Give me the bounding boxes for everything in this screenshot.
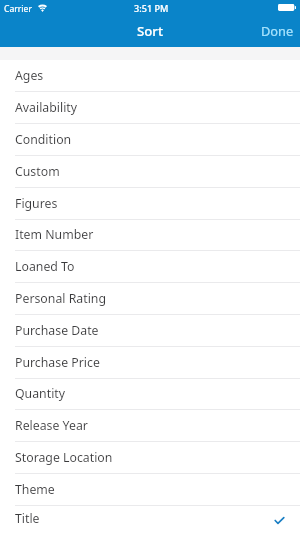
staticText: Ages: [15, 67, 44, 84]
staticText: Purchase Date: [15, 322, 99, 339]
staticText: Quantity: [15, 385, 66, 402]
button[interactable]: Ages: [0, 60, 300, 92]
staticText: Availability: [15, 99, 78, 116]
button[interactable]: Loaned To: [0, 251, 300, 283]
button[interactable]: Condition: [0, 124, 300, 156]
staticText: Done: [261, 22, 294, 39]
button[interactable]: Title: [0, 506, 300, 533]
staticText: 3:51 PM: [134, 2, 169, 14]
staticText: Storage Location: [15, 449, 113, 466]
staticText: Purchase Price: [15, 354, 100, 371]
staticText: Theme: [15, 481, 55, 498]
staticText: Loaned To: [15, 258, 75, 275]
staticText: Item Number: [15, 226, 94, 243]
staticText: Custom: [15, 163, 60, 180]
staticText: Title: [15, 510, 40, 527]
button[interactable]: Release Year: [0, 410, 300, 442]
button[interactable]: Custom: [0, 156, 300, 188]
button[interactable]: Done: [247, 20, 300, 47]
button[interactable]: Availability: [0, 92, 300, 124]
button[interactable]: Storage Location: [0, 442, 300, 474]
button[interactable]: Purchase Date: [0, 315, 300, 347]
button[interactable]: Personal Rating: [0, 283, 300, 315]
staticText: Carrier: [4, 3, 32, 15]
staticText: Figures: [15, 195, 58, 212]
staticText: Condition: [15, 131, 72, 148]
button[interactable]: Theme: [0, 474, 300, 506]
button[interactable]: Figures: [0, 188, 300, 220]
staticText: Sort: [137, 22, 163, 40]
button[interactable]: Item Number: [0, 220, 300, 251]
button[interactable]: Quantity: [0, 379, 300, 410]
staticText: Personal Rating: [15, 290, 106, 307]
other: Selected: [275, 517, 284, 524]
button[interactable]: Purchase Price: [0, 347, 300, 379]
staticText: Release Year: [15, 417, 88, 434]
